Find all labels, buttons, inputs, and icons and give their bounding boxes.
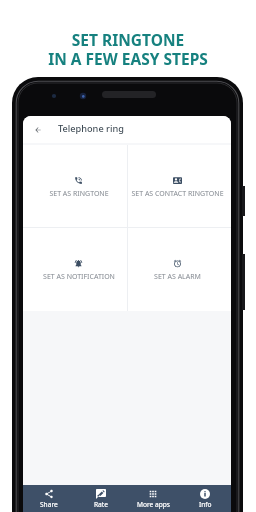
- staticText: Info: [199, 500, 212, 509]
- button[interactable]: More apps: [127, 485, 179, 512]
- staticText: Share: [40, 500, 58, 509]
- button[interactable]: SET AS NOTIFICATION: [29, 228, 128, 311]
- button[interactable]: Info: [179, 485, 231, 512]
- staticText: More apps: [137, 500, 170, 509]
- staticText: SET AS NOTIFICATION: [43, 272, 115, 282]
- button[interactable]: SET AS ALARM: [128, 228, 227, 311]
- button[interactable]: SET AS CONTACT RINGTONE: [128, 145, 227, 227]
- staticText: SET AS CONTACT RINGTONE: [131, 189, 224, 199]
- staticText: Telephone ring: [58, 122, 124, 135]
- staticText: SET RINGTONE IN A FEW EASY STEPS: [0, 29, 256, 70]
- staticText: SET AS ALARM: [154, 272, 201, 282]
- button[interactable]: Back: [29, 116, 46, 143]
- button[interactable]: Share: [23, 485, 75, 512]
- staticText: Rate: [94, 500, 108, 509]
- staticText: SET AS RINGTONE: [49, 189, 109, 199]
- button[interactable]: SET AS RINGTONE: [29, 145, 128, 227]
- button[interactable]: Rate: [75, 485, 127, 512]
